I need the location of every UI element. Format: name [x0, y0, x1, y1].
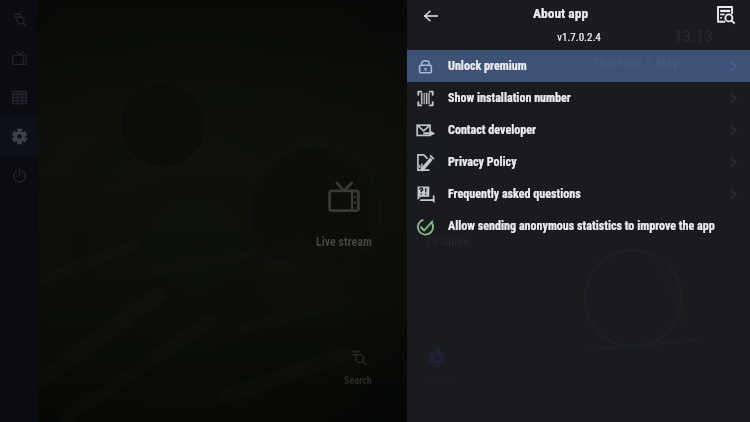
button[interactable]: Frequently asked questions: [407, 178, 750, 210]
button[interactable]: Allow sending anonymous statistics to im…: [407, 210, 750, 242]
staticText: Thursday, 1 May: [593, 55, 678, 70]
button[interactable]: Live stream: [0, 39, 38, 78]
button[interactable]: Search: [0, 0, 38, 39]
staticText: Search: [344, 375, 372, 387]
staticText: 13:13: [674, 26, 714, 46]
staticText: Contact developer: [448, 123, 537, 137]
button[interactable]: Unlock premium: [407, 50, 750, 82]
staticText: Show installation number: [448, 91, 571, 105]
button[interactable]: Show installation number: [407, 82, 750, 114]
button[interactable]: Back: [415, 0, 446, 31]
button[interactable]: Settings: [0, 117, 38, 156]
staticText: Frequently asked questions: [448, 187, 581, 201]
button[interactable]: Live stream: [306, 180, 382, 249]
staticText: TV Guide: [425, 235, 469, 249]
staticText: Privacy Policy: [448, 155, 517, 169]
button[interactable]: Search: [331, 348, 385, 387]
button[interactable]: Contact developer: [407, 114, 750, 146]
button[interactable]: Privacy Policy: [407, 146, 750, 178]
button[interactable]: View log: [711, 0, 741, 30]
staticText: Unlock premium: [448, 59, 527, 73]
staticText: Live stream: [316, 235, 372, 249]
button[interactable]: Power: [0, 156, 38, 195]
button[interactable]: TV guide: [0, 78, 38, 117]
staticText: Allow sending anonymous statistics to im…: [448, 219, 715, 233]
staticText: v1.7.0.2.4: [557, 31, 601, 44]
staticText: About app: [533, 5, 589, 21]
